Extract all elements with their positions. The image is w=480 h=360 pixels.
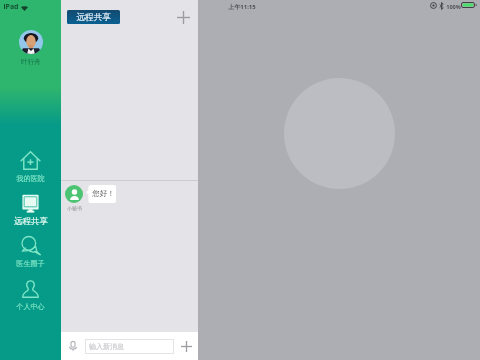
staticText: iPad: [3, 2, 19, 12]
staticText: 远程共享: [76, 12, 111, 23]
staticText: 叶行舟: [21, 58, 41, 66]
staticText: 我的医院: [16, 174, 45, 182]
staticText: 个人中心: [16, 302, 45, 310]
staticText: 您好！: [92, 189, 115, 198]
button[interactable]: 医生圈子: [0, 231, 61, 267]
staticText: 100%: [446, 3, 461, 11]
button[interactable]: 小秘书: [64, 185, 84, 211]
staticText: 上午11:15: [228, 3, 256, 11]
button[interactable]: Voice input: [61, 334, 85, 358]
button[interactable]: 远程共享: [67, 10, 120, 24]
staticText: 输入新消息: [89, 342, 124, 351]
staticText: 小秘书: [67, 205, 82, 211]
button[interactable]: Add: [176, 10, 191, 25]
button[interactable]: 个人中心: [0, 274, 61, 310]
staticText: 医生圈子: [16, 259, 45, 267]
staticText: 远程共享: [14, 216, 48, 225]
button[interactable]: 我的医院: [0, 146, 61, 182]
button[interactable]: 输入新消息: [85, 339, 174, 354]
button[interactable]: 远程共享: [0, 189, 61, 225]
button[interactable]: More options: [174, 334, 198, 358]
button[interactable]: Profile photo: [19, 30, 43, 54]
